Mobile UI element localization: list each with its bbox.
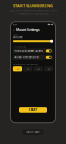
staticText: INTERRUPTIONS ARE SILENCED bbox=[17, 12, 49, 15]
staticText: 8h bbox=[47, 67, 49, 70]
staticText: START bbox=[28, 108, 37, 112]
staticText: 9:41 bbox=[13, 23, 17, 26]
button[interactable]: 4h bbox=[34, 66, 43, 71]
button[interactable]: Hide Lock Screen Alerts bbox=[13, 48, 53, 53]
button[interactable]: 2h bbox=[23, 66, 32, 71]
staticText: Mount Settings bbox=[16, 27, 40, 32]
button[interactable]: DARK MAP bbox=[22, 129, 43, 135]
button[interactable]: START bbox=[19, 107, 47, 113]
staticText: 4h bbox=[37, 67, 39, 70]
button[interactable]: Back bbox=[13, 28, 15, 32]
staticText: Notifications bbox=[13, 45, 26, 48]
staticText: Allow Time Sensitive bbox=[14, 56, 38, 59]
staticText: Hide Lock Screen Alerts bbox=[14, 49, 42, 53]
staticText: 2h bbox=[27, 67, 29, 70]
staticText: DARK MAP bbox=[25, 130, 40, 134]
staticText: 1h bbox=[16, 67, 18, 70]
staticText: ADJUST THE MOOD UNDER WHICH YOUR bbox=[9, 9, 56, 12]
button[interactable]: 8h bbox=[44, 66, 53, 71]
staticText: Audio bbox=[13, 33, 18, 36]
staticText: Duration of the session bbox=[13, 63, 37, 66]
staticText: START SLUMBERING bbox=[13, 3, 53, 8]
staticText: Volume bbox=[13, 36, 22, 39]
staticText: ‹ bbox=[13, 27, 14, 32]
button[interactable]: Allow Time Sensitive bbox=[13, 55, 53, 60]
button[interactable]: 1h bbox=[13, 66, 22, 71]
